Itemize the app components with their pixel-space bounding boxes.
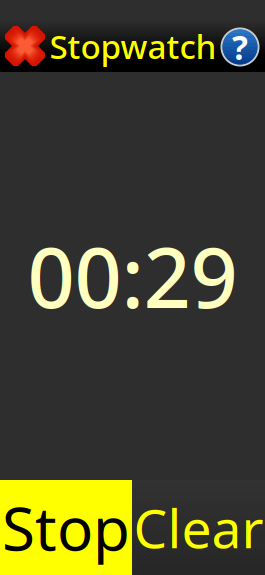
button[interactable]: Clear [132, 480, 265, 575]
button[interactable]: Help [216, 21, 264, 73]
staticText: Stopwatch [49, 24, 216, 68]
staticText: Stop [2, 488, 130, 567]
staticText: Clear [133, 492, 263, 563]
button[interactable]: Stop [0, 480, 132, 575]
staticText: 00:29 [27, 221, 237, 331]
button[interactable]: Close [0, 20, 50, 72]
staticText: ? [232, 25, 248, 69]
